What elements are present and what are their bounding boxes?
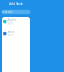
button[interactable]: Apple — [2, 18, 30, 26]
staticText: Apple — [8, 18, 17, 21]
staticText: Search — [5, 10, 13, 14]
staticText: META — [8, 34, 14, 37]
staticText: Meta — [8, 30, 14, 33]
staticText: Add Stock — [9, 2, 23, 6]
button[interactable]: Meta — [2, 30, 30, 38]
staticText: AAPL — [8, 22, 15, 25]
